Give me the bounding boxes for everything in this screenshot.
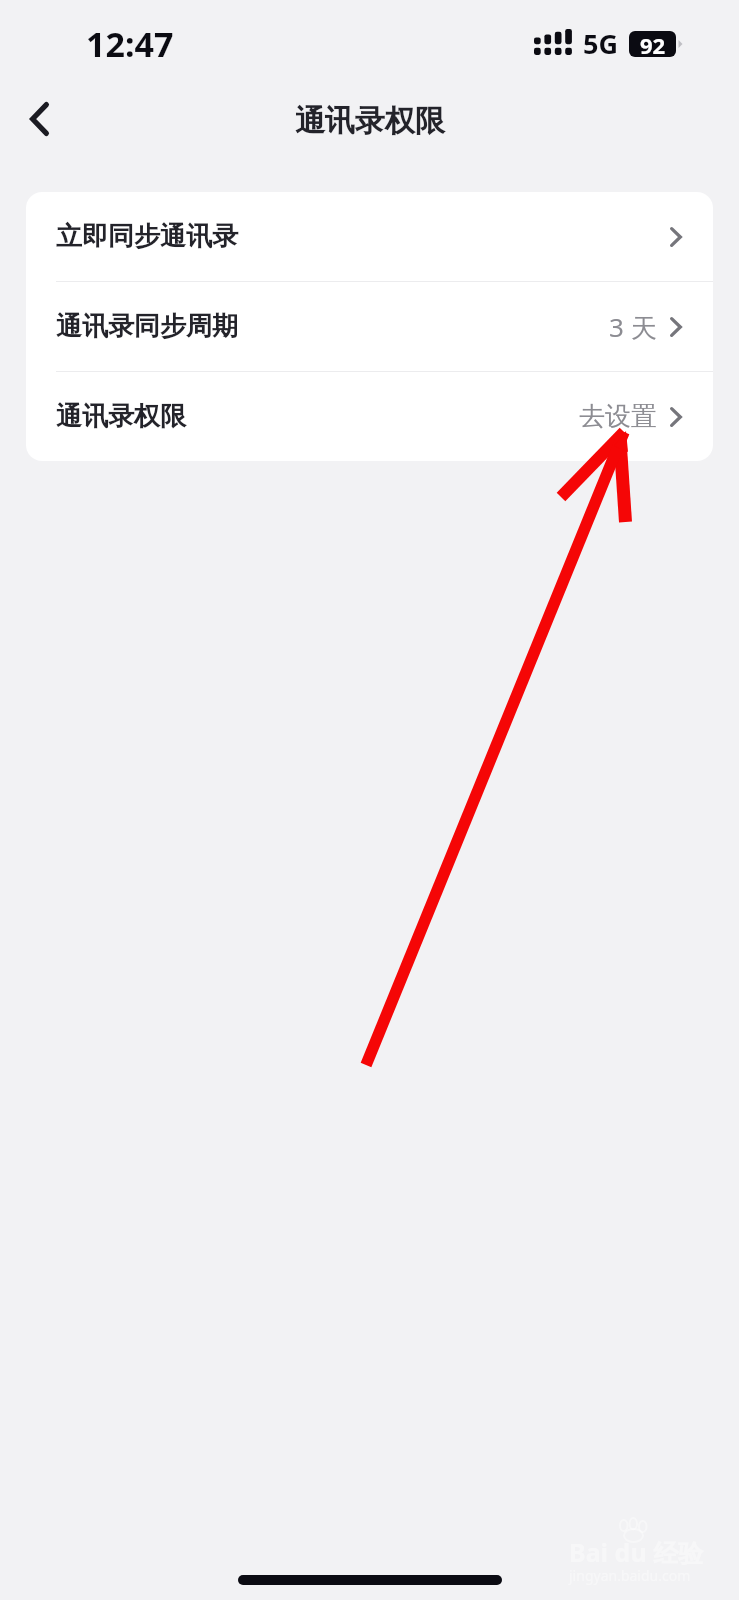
staticText: 通讯录权限 [56, 400, 186, 433]
button[interactable]: 通讯录同步周期 [26, 282, 713, 371]
staticText: 立即同步通讯录 [56, 220, 238, 253]
staticText: 12:47 [86, 21, 174, 67]
staticText: 92 [640, 31, 666, 56]
staticText: 通讯录权限 [295, 102, 445, 140]
staticText: 3 天 [609, 309, 657, 345]
button[interactable]: Back [8, 88, 70, 150]
button[interactable]: 通讯录权限 [26, 372, 713, 461]
staticText: 5G [583, 25, 618, 62]
staticText: 通讯录同步周期 [56, 310, 238, 343]
staticText: 去设置 [579, 400, 657, 433]
button[interactable]: 立即同步通讯录 [26, 192, 713, 281]
